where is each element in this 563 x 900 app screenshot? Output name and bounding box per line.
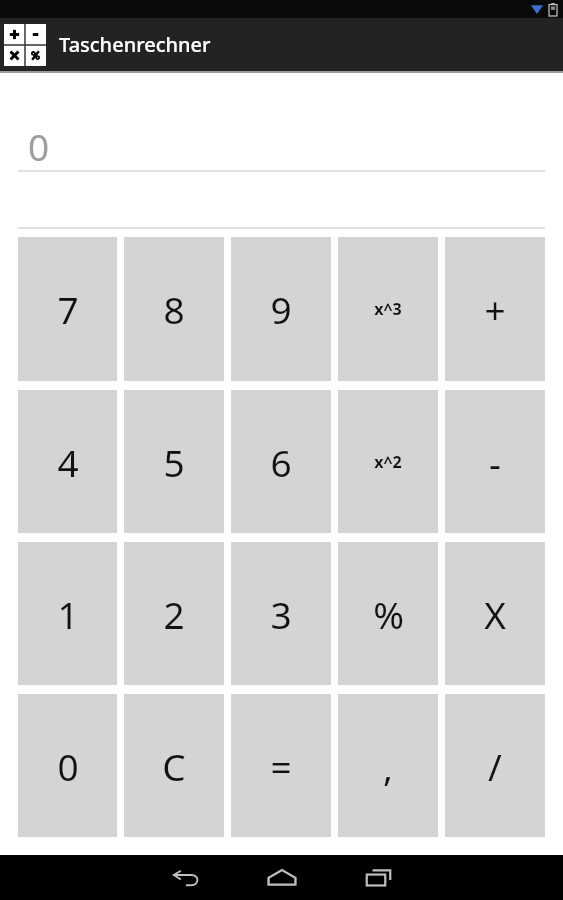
staticText: x^2 [374,451,402,473]
button[interactable]: 3 [231,542,331,685]
button[interactable]: Recent apps [355,855,401,900]
staticText: C [162,741,186,791]
button[interactable]: - [445,390,545,533]
button[interactable]: 5 [124,390,224,533]
button[interactable]: 7 [18,237,117,381]
button[interactable]: Home [259,855,305,900]
staticText: 5 [163,437,185,487]
button[interactable]: x^3 [338,237,438,381]
staticText: X [484,589,506,639]
button[interactable]: C [124,694,224,837]
staticText: / [488,741,502,791]
staticText: 0 [57,741,79,791]
button[interactable]: x^2 [338,390,438,533]
button[interactable]: 4 [18,390,117,533]
staticText: 8 [163,284,185,334]
button[interactable]: 2 [124,542,224,685]
button[interactable]: / [445,694,545,837]
staticText: 1 [57,589,79,639]
staticText: - [489,437,501,487]
button[interactable]: 8 [124,237,224,381]
button[interactable]: % [338,542,438,685]
button[interactable]: Back [163,855,209,900]
button[interactable]: 0 [18,121,545,170]
staticText: % [373,589,404,639]
button[interactable]: + [445,237,545,381]
staticText: x^3 [374,298,402,320]
staticText: 9 [270,284,292,334]
staticText: = [270,741,292,791]
staticText: 3 [270,589,292,639]
staticText: 7 [57,284,79,334]
button[interactable]: 9 [231,237,331,381]
staticText: Taschenrechner [59,31,211,58]
button[interactable]: 6 [231,390,331,533]
staticText: 2 [163,589,185,639]
staticText: + [484,284,506,334]
button[interactable]: , [338,694,438,837]
staticText: 6 [270,437,292,487]
staticText: 4 [57,437,79,487]
button[interactable]: 0 [18,694,117,837]
button[interactable]: X [445,542,545,685]
staticText: 0 [28,121,50,170]
button[interactable]: = [231,694,331,837]
staticText: , [383,741,393,791]
button[interactable]: 1 [18,542,117,685]
